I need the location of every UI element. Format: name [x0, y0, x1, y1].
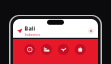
staticText: Indonesia — [24, 32, 40, 37]
button[interactable]: Profile — [88, 28, 94, 34]
staticText: Bali — [24, 25, 35, 32]
button[interactable]: Villas — [75, 44, 86, 55]
button[interactable]: Flights — [58, 44, 69, 55]
button[interactable]: Hotels — [41, 44, 52, 55]
button[interactable]: Explore — [24, 44, 35, 55]
